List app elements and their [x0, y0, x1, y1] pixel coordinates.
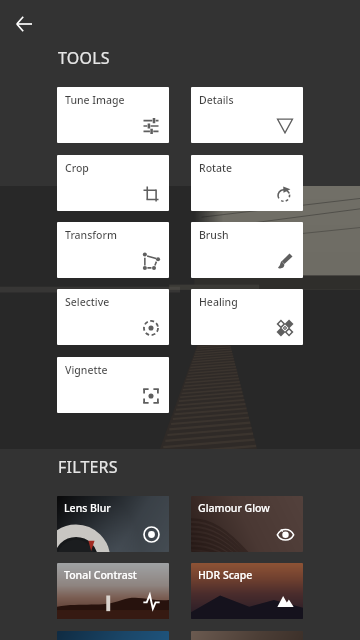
staticText: Crop	[65, 161, 89, 175]
staticText: Lens Blur	[64, 501, 111, 515]
button[interactable]: Rotate	[191, 155, 303, 211]
staticText: TOOLS	[58, 47, 110, 69]
staticText: Details	[199, 93, 234, 107]
staticText: Selective	[65, 295, 110, 309]
staticText: Rotate	[199, 161, 233, 175]
button[interactable]: Transform	[57, 222, 169, 278]
button[interactable]: Brush	[191, 222, 303, 278]
button[interactable]: Tune Image	[57, 87, 169, 143]
button[interactable]: Details	[191, 87, 303, 143]
staticText: FILTERS	[58, 456, 118, 478]
button[interactable]: Vignette	[57, 357, 169, 413]
staticText: Transform	[65, 228, 117, 242]
button[interactable]	[57, 631, 169, 640]
staticText: Glamour Glow	[198, 501, 270, 515]
staticText: Brush	[199, 228, 229, 242]
staticText: Vignette	[65, 363, 108, 377]
staticText: Healing	[199, 295, 238, 309]
staticText: Tonal Contrast	[64, 568, 137, 582]
button[interactable]: Tonal Contrast	[57, 563, 169, 619]
staticText: HDR Scape	[198, 568, 253, 582]
button[interactable]	[191, 631, 303, 640]
button[interactable]: Healing	[191, 289, 303, 345]
button[interactable]: Back	[7, 7, 41, 41]
button[interactable]: Selective	[57, 289, 169, 345]
staticText: Tune Image	[65, 93, 125, 107]
button[interactable]: Lens Blur	[57, 496, 169, 552]
button[interactable]: Crop	[57, 155, 169, 211]
button[interactable]: HDR Scape	[191, 563, 303, 619]
button[interactable]: Glamour Glow	[191, 496, 303, 552]
